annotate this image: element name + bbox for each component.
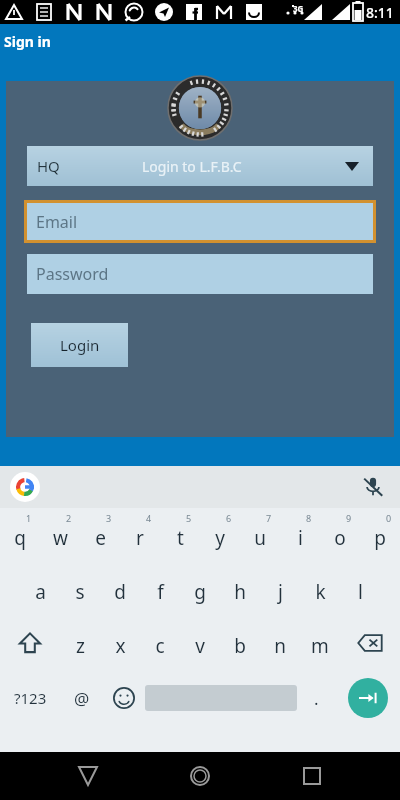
button[interactable]: HQ xyxy=(27,146,373,186)
button[interactable]: g xyxy=(180,562,220,616)
staticText: v xyxy=(195,633,205,659)
staticText: 2 xyxy=(66,512,72,524)
button[interactable]: b xyxy=(220,616,260,670)
button[interactable]: e xyxy=(80,508,120,562)
staticText: k xyxy=(315,579,326,605)
button[interactable]: Back xyxy=(64,752,112,800)
button[interactable]: h xyxy=(220,562,260,616)
staticText: d xyxy=(114,579,126,605)
button[interactable]: m xyxy=(300,616,340,670)
button[interactable]: i xyxy=(280,508,320,562)
staticText: p xyxy=(374,525,386,551)
staticText: 8:11 xyxy=(366,3,394,22)
button[interactable]: c xyxy=(140,616,180,670)
staticText: r xyxy=(136,525,144,551)
staticText: 5 xyxy=(186,512,192,524)
staticText: 6 xyxy=(226,512,232,524)
staticText: Password xyxy=(36,263,109,285)
staticText: 8 xyxy=(306,512,312,524)
staticText: a xyxy=(35,579,46,605)
staticText: ?123 xyxy=(14,688,47,708)
button[interactable]: s xyxy=(60,562,100,616)
button[interactable]: f xyxy=(140,562,180,616)
staticText: @ xyxy=(74,687,90,710)
button[interactable]: r xyxy=(120,508,160,562)
button[interactable]: Email xyxy=(27,203,373,240)
button[interactable]: x xyxy=(100,616,140,670)
button[interactable]: y xyxy=(200,508,240,562)
button[interactable]: u xyxy=(240,508,280,562)
button[interactable]: Google xyxy=(10,472,40,502)
button[interactable]: Password xyxy=(27,254,373,294)
staticText: g xyxy=(194,579,206,605)
staticText: f xyxy=(157,579,164,605)
button[interactable]: Home xyxy=(176,752,224,800)
staticText: 3 xyxy=(106,512,112,524)
staticText: l xyxy=(358,579,363,605)
button[interactable]: l xyxy=(340,562,380,616)
button[interactable]: . xyxy=(297,670,335,726)
staticText: w xyxy=(53,525,68,551)
staticText: Login to L.F.B.C xyxy=(142,157,242,176)
staticText: x xyxy=(115,633,126,659)
button[interactable]: Shift xyxy=(0,616,60,670)
staticText: b xyxy=(234,633,246,659)
button[interactable]: d xyxy=(100,562,140,616)
staticText: j xyxy=(278,579,283,605)
staticText: Login xyxy=(60,335,100,355)
staticText: t xyxy=(177,525,184,551)
staticText: 3G xyxy=(293,3,304,14)
staticText: y xyxy=(215,525,225,551)
staticText: z xyxy=(76,633,85,659)
button[interactable]: q xyxy=(0,508,40,562)
staticText: 4 xyxy=(146,512,152,524)
button[interactable]: ?123 xyxy=(0,670,61,726)
staticText: 0 xyxy=(386,512,392,524)
button[interactable]: k xyxy=(300,562,340,616)
staticText: o xyxy=(334,525,346,551)
button[interactable]: n xyxy=(260,616,300,670)
staticText: q xyxy=(14,525,26,551)
button[interactable]: z xyxy=(60,616,100,670)
staticText: c xyxy=(155,633,165,659)
staticText: Sign in xyxy=(4,32,51,51)
staticText: m xyxy=(311,633,329,659)
other: Church logo xyxy=(168,76,232,140)
button[interactable]: Backspace xyxy=(340,616,400,670)
button[interactable]: Emoji xyxy=(103,670,145,726)
staticText: 1 xyxy=(26,512,32,524)
button[interactable]: v xyxy=(180,616,220,670)
button[interactable]: w xyxy=(40,508,80,562)
button[interactable] xyxy=(145,670,297,726)
staticText: s xyxy=(75,579,85,605)
button[interactable]: Login xyxy=(31,323,128,367)
staticText: Email xyxy=(36,211,78,233)
button[interactable]: @ xyxy=(61,670,103,726)
staticText: u xyxy=(254,525,266,551)
button[interactable]: p xyxy=(360,508,400,562)
staticText: i xyxy=(298,525,303,551)
button[interactable]: t xyxy=(160,508,200,562)
button[interactable]: Voice input off xyxy=(358,472,388,502)
staticText: HQ xyxy=(37,156,60,176)
button[interactable]: j xyxy=(260,562,300,616)
staticText: . xyxy=(314,687,319,710)
staticText: 9 xyxy=(346,512,352,524)
staticText: e xyxy=(95,525,106,551)
button[interactable]: a xyxy=(20,562,60,616)
button[interactable]: Recents xyxy=(288,752,336,800)
button[interactable]: o xyxy=(320,508,360,562)
staticText: h xyxy=(234,579,246,605)
button[interactable]: Enter xyxy=(335,670,400,726)
staticText: n xyxy=(274,633,286,659)
staticText: 7 xyxy=(266,512,272,524)
